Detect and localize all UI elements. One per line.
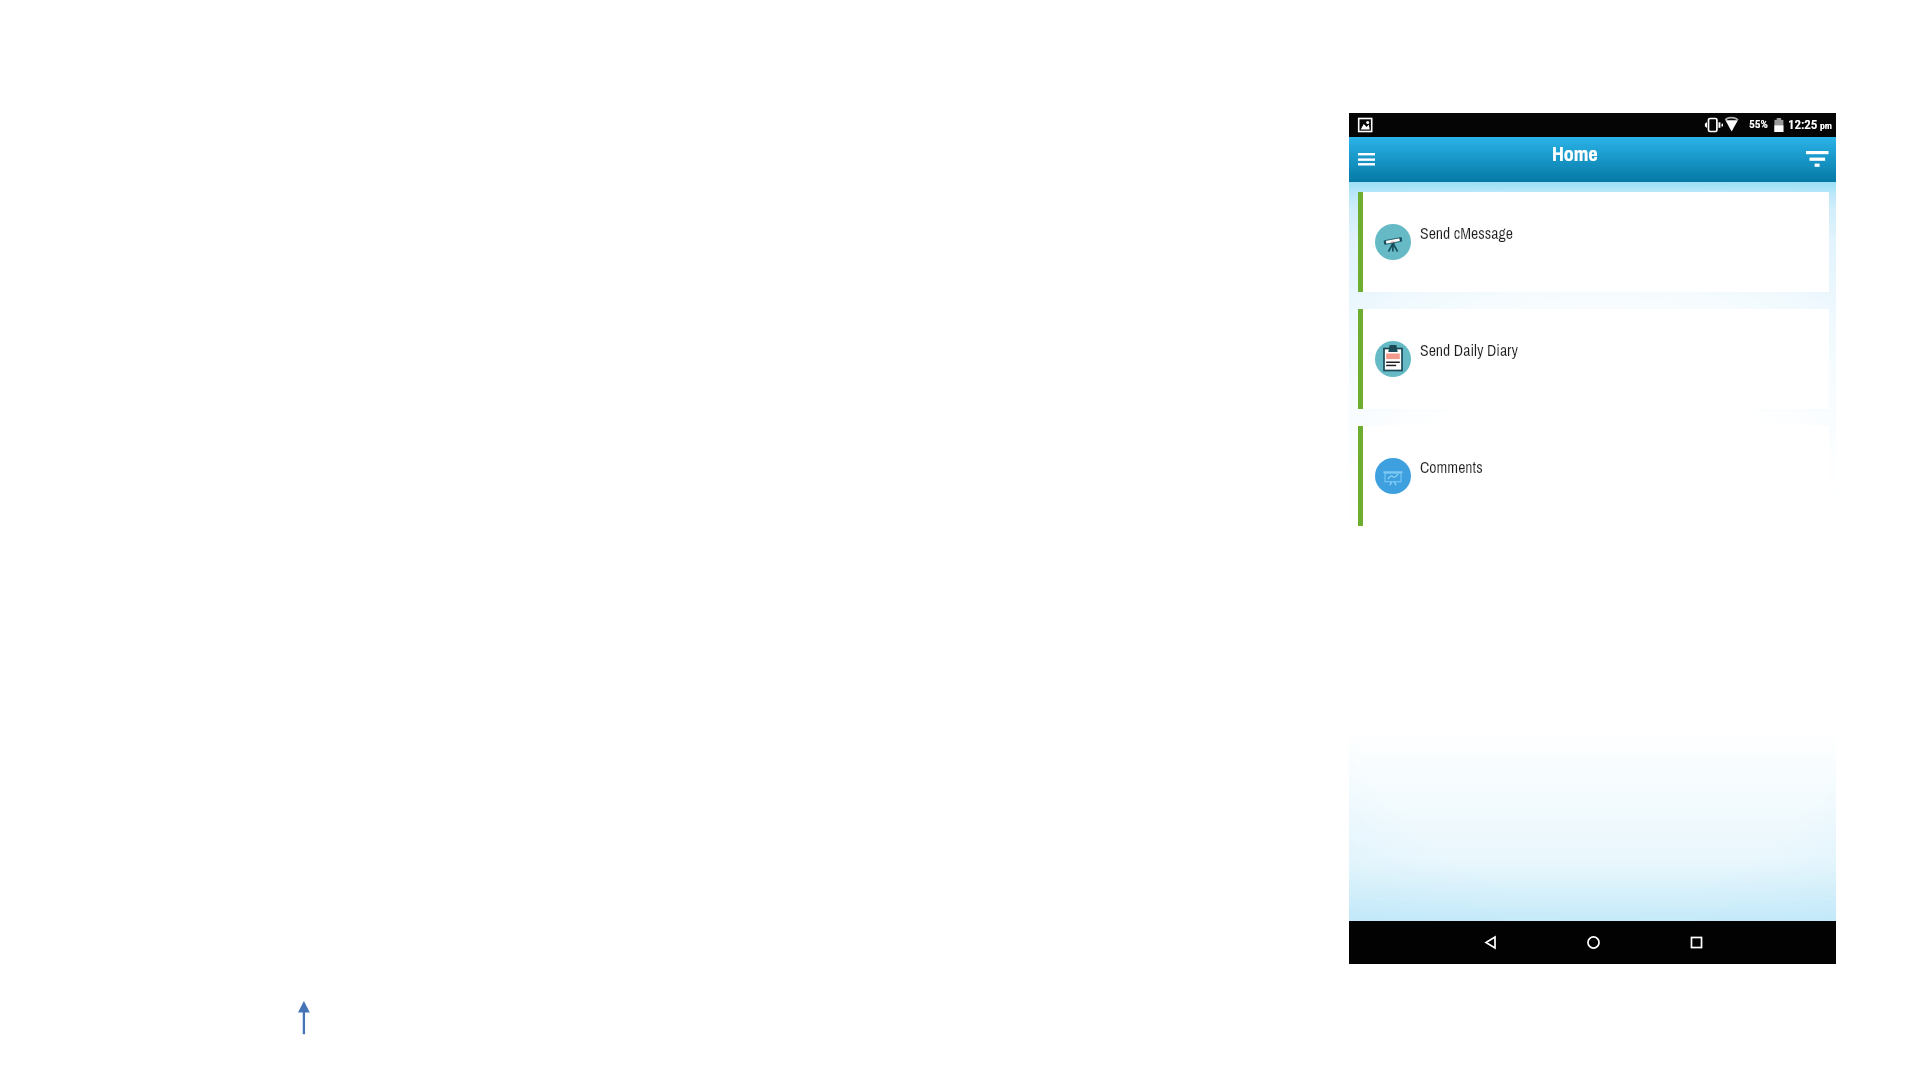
button[interactable]: Send Daily Diary — [1358, 309, 1829, 409]
staticText: Send Daily Diary — [1420, 340, 1518, 361]
button[interactable]: Recent apps — [1674, 921, 1718, 964]
button[interactable]: Back — [1468, 921, 1512, 964]
staticText: 55% — [1749, 117, 1768, 130]
button[interactable]: Open navigation menu — [1349, 137, 1383, 182]
staticText: 12:25 — [1788, 117, 1818, 132]
other: Upward annotation arrow — [296, 1000, 310, 1036]
staticText: Comments — [1420, 457, 1483, 478]
button[interactable]: Home — [1571, 921, 1615, 964]
button[interactable]: Send cMessage — [1358, 192, 1829, 292]
staticText: Home — [1552, 140, 1598, 167]
button[interactable]: Comments — [1358, 426, 1829, 526]
button[interactable]: Filter — [1798, 137, 1836, 182]
staticText: pm — [1820, 120, 1832, 131]
staticText: Send cMessage — [1420, 223, 1513, 244]
